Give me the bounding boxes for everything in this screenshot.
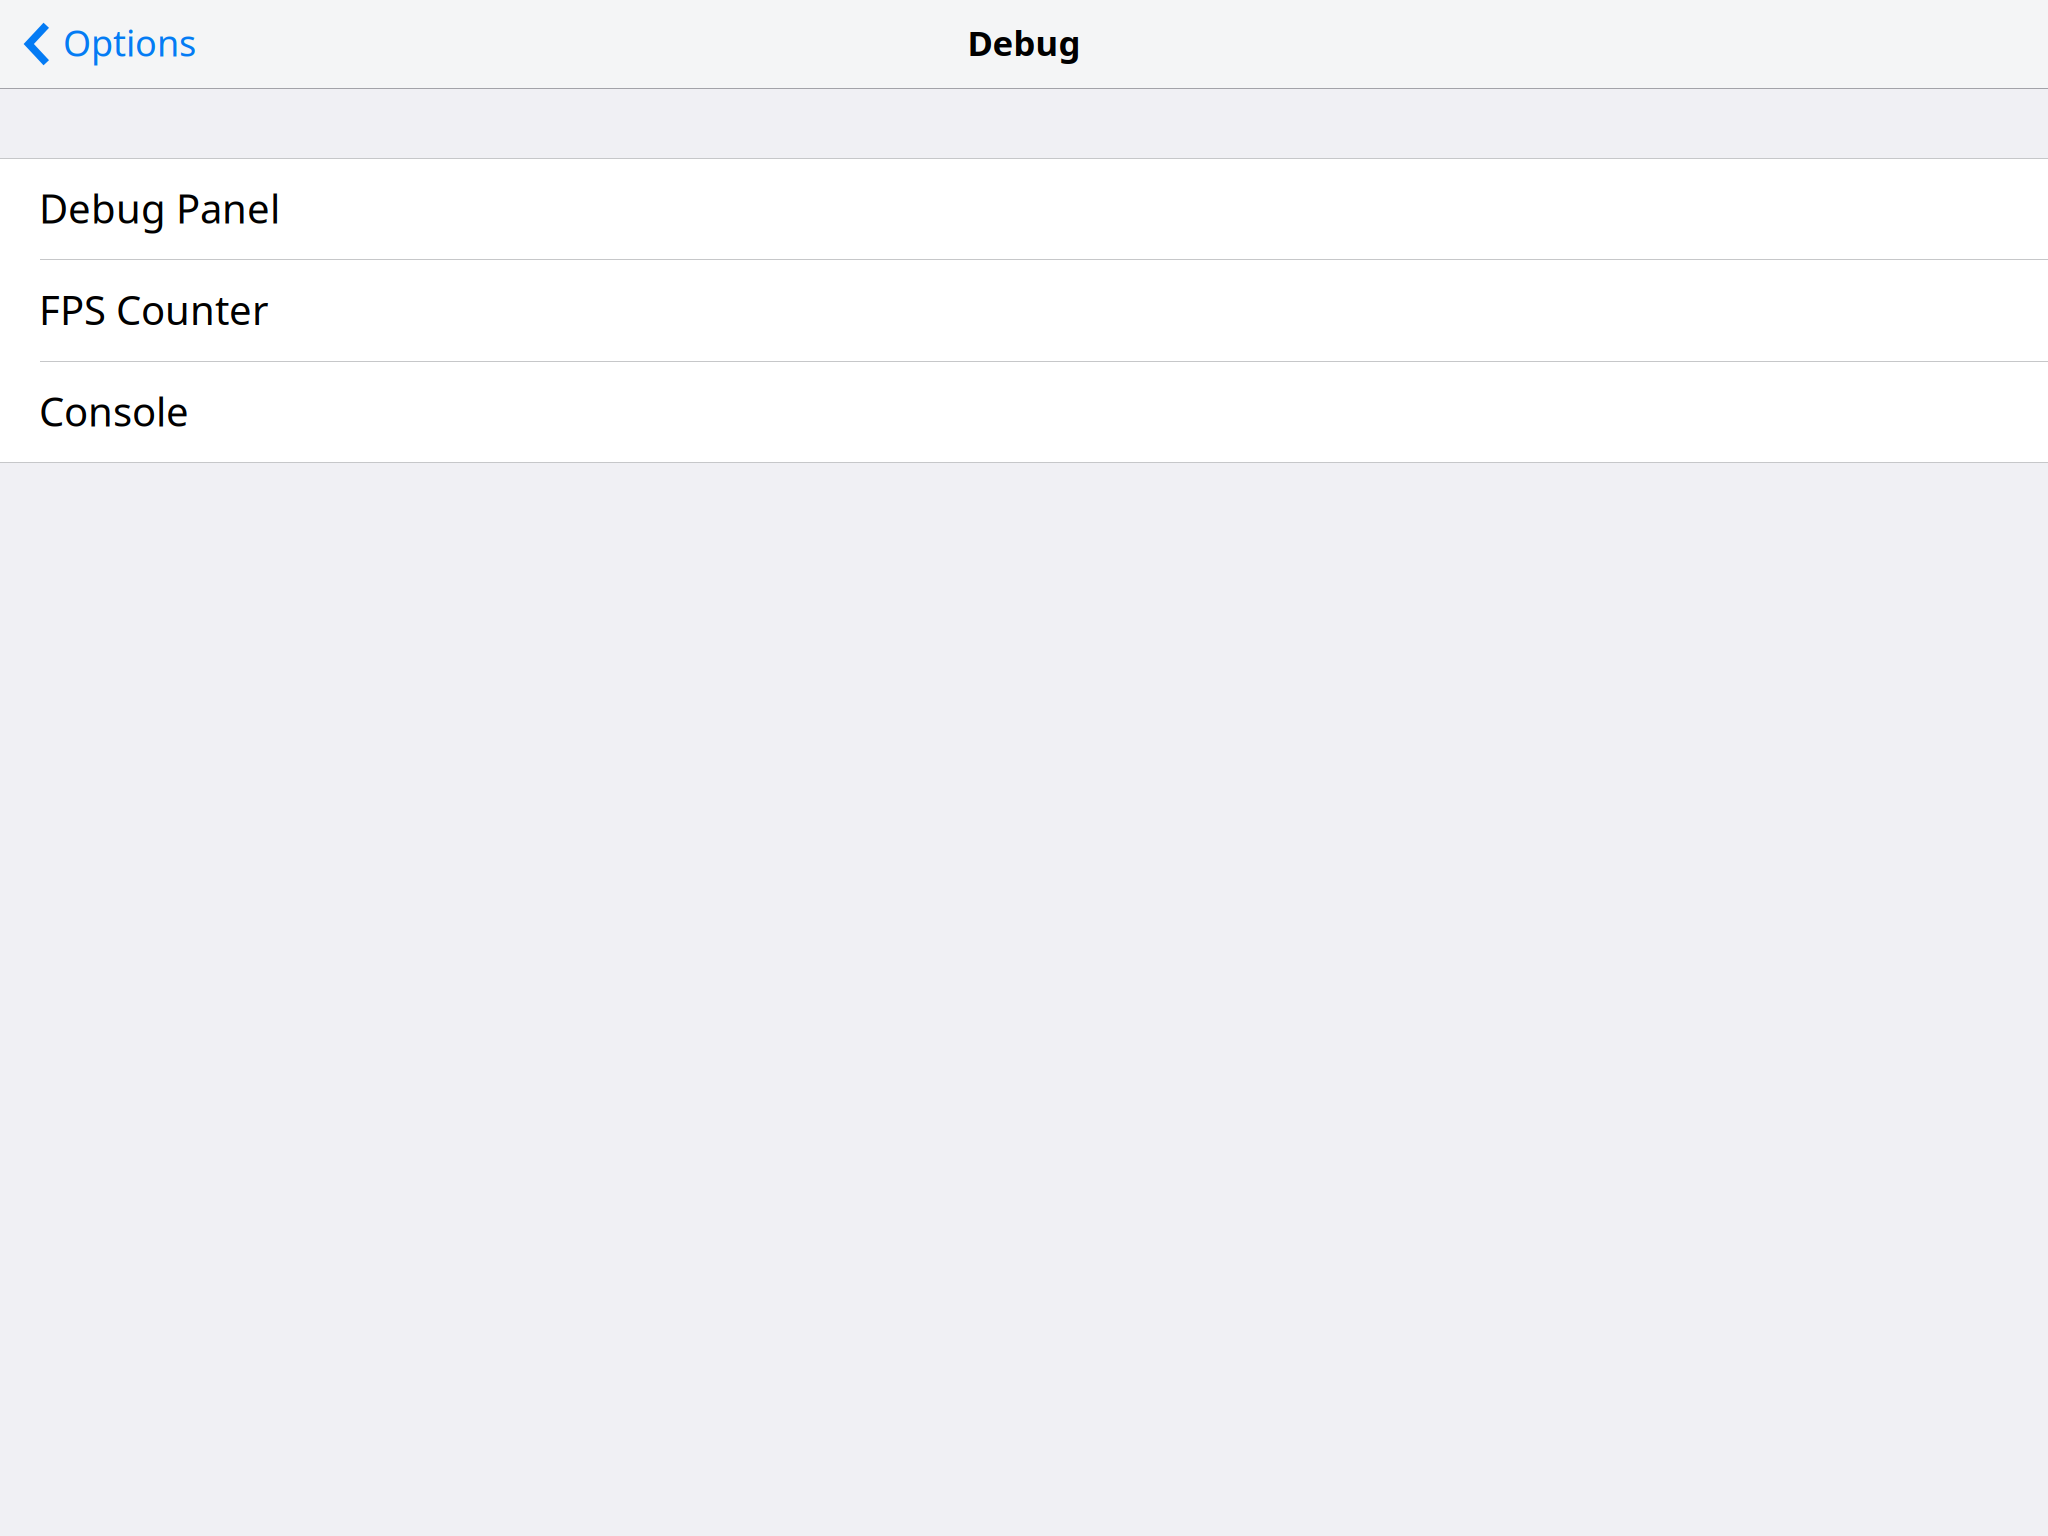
button[interactable]: FPS Counter bbox=[0, 260, 2048, 361]
staticText: FPS Counter bbox=[39, 283, 269, 336]
staticText: Console bbox=[39, 384, 189, 437]
staticText: Options bbox=[63, 19, 196, 66]
staticText: Debug Panel bbox=[39, 181, 280, 234]
staticText: Debug bbox=[967, 19, 1080, 65]
button[interactable]: Debug Panel bbox=[0, 159, 2048, 259]
button[interactable]: Back to Options bbox=[0, 0, 210, 88]
button[interactable]: Console bbox=[0, 362, 2048, 462]
